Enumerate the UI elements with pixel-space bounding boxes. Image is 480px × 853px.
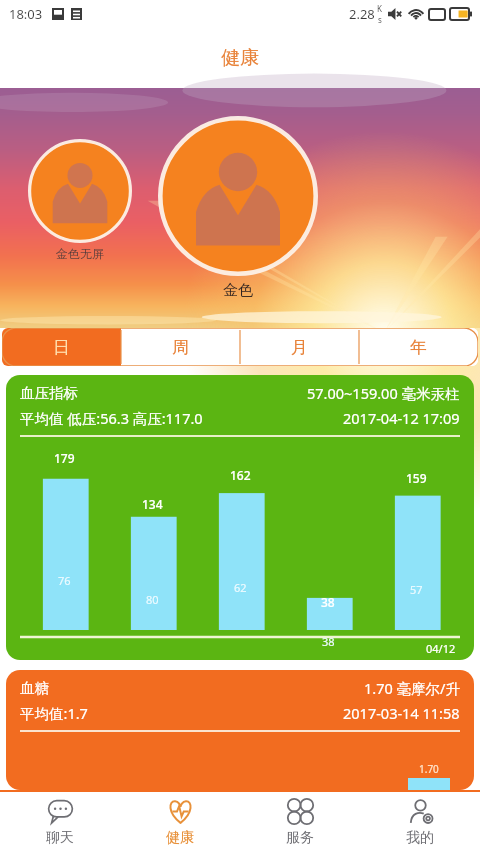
staticText: 血糖 <box>20 679 49 697</box>
staticText: 80 <box>146 592 159 607</box>
staticText: 134 <box>142 496 163 512</box>
staticText: 2.28 <box>349 5 375 23</box>
staticText: 62 <box>234 580 247 595</box>
button[interactable]: 年 <box>359 328 478 366</box>
button[interactable]: 血糖 <box>6 670 474 790</box>
staticText: s <box>378 14 382 25</box>
staticText: 金色无屏 <box>45 246 115 261</box>
button[interactable]: 我的 <box>360 792 480 853</box>
staticText: 平均值 低压:56.3 高压:117.0 <box>20 408 203 428</box>
button[interactable]: 日 <box>2 328 121 366</box>
staticText: 年 <box>410 337 427 358</box>
button[interactable]: 月 <box>240 328 359 366</box>
button[interactable]: 服务 <box>240 792 360 853</box>
staticText: 健康 <box>221 46 259 70</box>
staticText: 38 <box>322 634 335 649</box>
staticText: 聊天 <box>46 829 74 847</box>
staticText: 04/12 <box>426 641 456 656</box>
button[interactable]: 金色 设备 <box>158 116 318 276</box>
staticText: 179 <box>54 450 75 466</box>
staticText: 日 <box>53 337 70 358</box>
staticText: 162 <box>230 467 251 483</box>
staticText: 1.70 <box>419 762 439 776</box>
staticText: 我的 <box>406 829 434 847</box>
staticText: 平均值:1.7 <box>20 703 88 723</box>
staticText: 57 <box>410 582 423 597</box>
staticText: 服务 <box>286 829 314 847</box>
staticText: 金色 <box>203 281 273 300</box>
staticText: 159 <box>406 470 427 486</box>
staticText: 2017-03-14 11:58 <box>343 703 460 723</box>
button[interactable]: 血压指标 <box>6 375 474 660</box>
button[interactable]: 金色无屏 设备 <box>28 139 132 243</box>
button[interactable]: 健康 <box>120 792 240 853</box>
staticText: 38 <box>321 594 335 610</box>
staticText: 血压指标 <box>20 384 78 402</box>
button[interactable]: 聊天 <box>0 792 120 853</box>
staticText: 18:03 <box>9 5 43 23</box>
staticText: 1.70 毫摩尔/升 <box>364 678 460 698</box>
staticText: 周 <box>172 337 189 358</box>
staticText: 2017-04-12 17:09 <box>343 408 460 428</box>
staticText: 76 <box>58 573 71 588</box>
staticText: 月 <box>291 337 308 358</box>
staticText: 健康 <box>166 829 194 847</box>
staticText: 57.00~159.00 毫米汞柱 <box>307 383 460 403</box>
button[interactable]: 周 <box>121 328 240 366</box>
staticText: K <box>377 3 382 14</box>
